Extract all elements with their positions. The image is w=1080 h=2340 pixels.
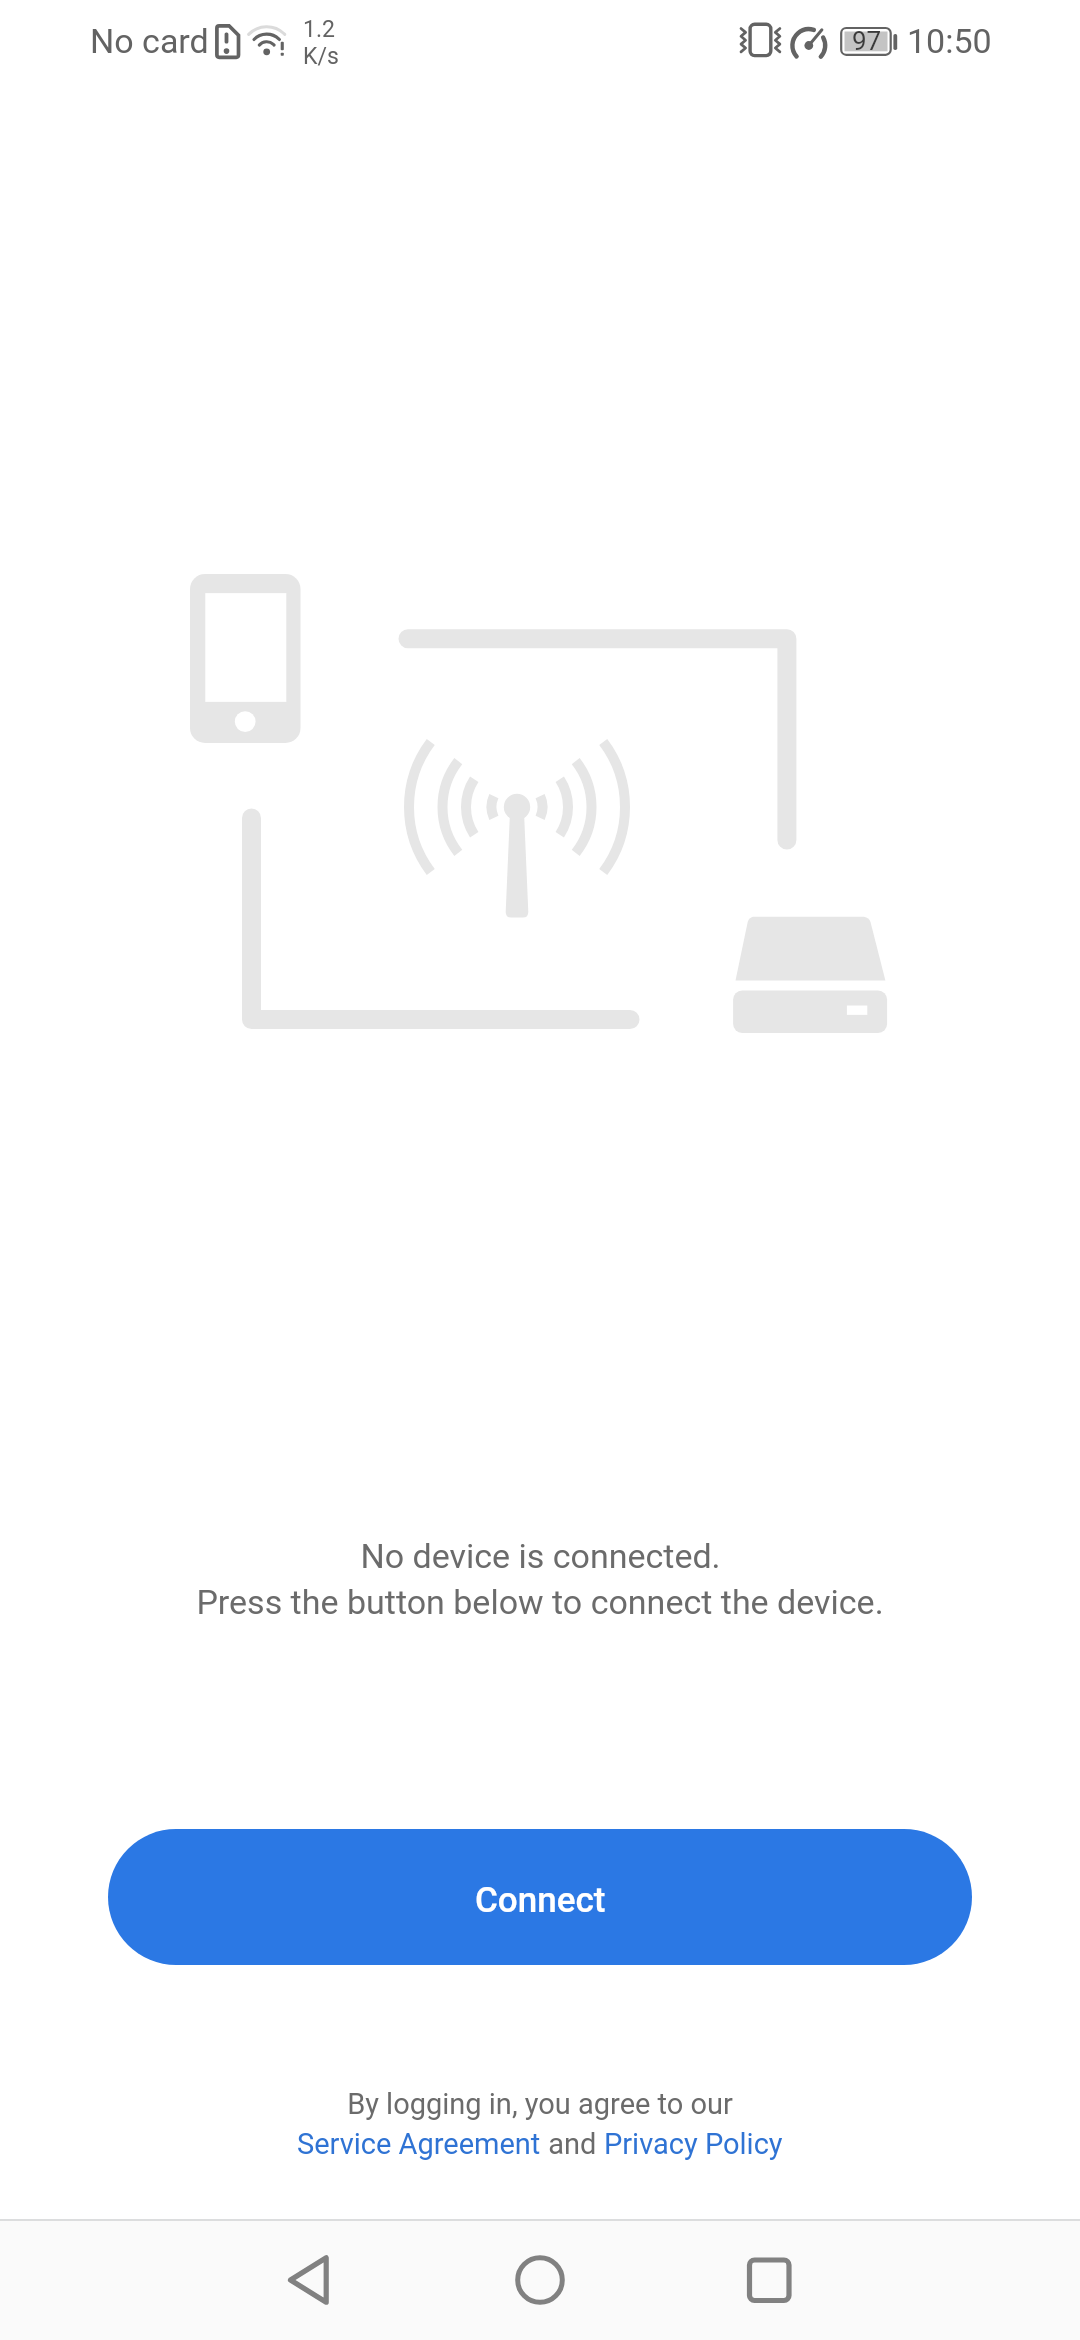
- staticText: By logging in, you agree to our: [347, 2087, 733, 2121]
- staticText: and: [541, 2127, 604, 2161]
- staticText: K/s: [303, 43, 339, 70]
- staticText: Service Agreement: [297, 2127, 541, 2161]
- button[interactable]: Home: [480, 2220, 600, 2339]
- staticText: 97: [852, 26, 882, 56]
- staticText: Privacy Policy: [604, 2127, 783, 2161]
- button[interactable]: Recent apps: [709, 2220, 829, 2339]
- staticText: Press the button below to connect the de…: [196, 1582, 884, 1622]
- staticText: Connect: [475, 1880, 606, 1921]
- staticText: No device is connected.: [360, 1536, 721, 1576]
- staticText: 1.2: [303, 16, 335, 43]
- button[interactable]: Service Agreement: [297, 2127, 541, 2161]
- button[interactable]: Connect: [108, 1829, 972, 1965]
- staticText: No card: [90, 21, 209, 61]
- button[interactable]: Privacy Policy: [604, 2127, 783, 2161]
- button[interactable]: Back: [248, 2220, 368, 2339]
- staticText: 10:50: [907, 21, 992, 61]
